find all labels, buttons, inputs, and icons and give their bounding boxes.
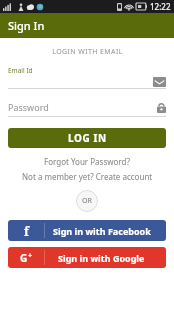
staticText: Password — [8, 101, 49, 113]
staticText: LOG IN — [68, 131, 107, 145]
button[interactable]: Forgot Your Password? — [40, 155, 134, 168]
other: Email — [153, 77, 166, 87]
staticText: 12:22 — [150, 1, 171, 12]
button[interactable]: f — [8, 220, 166, 241]
staticText: OR — [82, 196, 92, 206]
staticText: f — [24, 223, 29, 239]
button[interactable]: G — [8, 247, 166, 268]
button[interactable]: Email Id — [8, 66, 166, 89]
staticText: G — [20, 251, 28, 265]
staticText: Forgot Your Password? — [44, 156, 130, 167]
staticText: Sign In — [8, 18, 45, 33]
button[interactable]: Not a member yet? Create account — [18, 170, 157, 183]
staticText: + — [28, 251, 33, 261]
staticText: Sign in with Google — [58, 252, 145, 264]
staticText: Not a member yet? Create account — [22, 171, 153, 182]
other: Password — [157, 102, 166, 113]
staticText: LOGIN WITH EMAIL — [52, 47, 123, 57]
button[interactable]: Password — [8, 100, 166, 117]
staticText: Email Id — [8, 66, 33, 75]
button[interactable]: LOG IN — [8, 128, 166, 148]
staticText: Sign in with Facebook — [53, 225, 151, 237]
